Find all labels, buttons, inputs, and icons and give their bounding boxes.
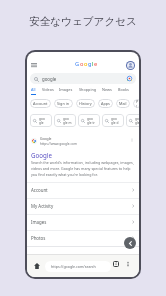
staticText: News xyxy=(102,87,112,92)
button[interactable]: Home xyxy=(34,263,40,269)
button[interactable]: Sign in xyxy=(57,99,70,108)
button[interactable]: Back xyxy=(124,237,136,249)
staticText: Google xyxy=(31,151,52,159)
staticText: Mail xyxy=(119,101,127,106)
staticText: Images xyxy=(31,219,47,225)
staticText: goo xyxy=(39,117,45,121)
staticText: e xyxy=(94,60,98,68)
staticText: https://google.com/search xyxy=(51,264,96,269)
button[interactable]: Account xyxy=(33,99,48,108)
staticText: My Activity xyxy=(31,203,54,209)
button[interactable]: goo xyxy=(126,114,139,127)
button[interactable]: google xyxy=(30,73,136,84)
button[interactable]: Menu xyxy=(31,63,37,67)
staticText: google xyxy=(42,76,57,82)
staticText: Books xyxy=(118,87,129,92)
staticText: Search the world's information, includin… xyxy=(31,160,135,177)
button[interactable]: Account xyxy=(27,182,139,198)
staticText: goo xyxy=(135,117,139,121)
button[interactable]: https://google.com/search xyxy=(45,261,111,272)
staticText: goo xyxy=(111,117,117,121)
staticText: o xyxy=(84,60,88,68)
staticText: Account xyxy=(31,187,48,193)
button[interactable]: goo xyxy=(78,114,100,127)
button[interactable]: Shopping xyxy=(79,87,97,94)
staticText: gle d xyxy=(111,121,119,125)
staticText: goo xyxy=(87,117,93,121)
staticText: gle tr xyxy=(87,121,95,125)
button[interactable]: All xyxy=(31,87,36,95)
button[interactable]: goo xyxy=(54,114,76,127)
button[interactable]: Account xyxy=(126,61,135,70)
staticText: Images xyxy=(59,87,73,92)
staticText: goo xyxy=(63,117,69,121)
button[interactable]: Tabs xyxy=(113,261,119,267)
button[interactable]: Play xyxy=(136,99,139,108)
button[interactable]: News xyxy=(102,87,112,94)
staticText: Videos xyxy=(42,87,54,92)
button[interactable]: Images xyxy=(59,87,73,94)
button[interactable]: goo xyxy=(30,114,52,127)
staticText: Play xyxy=(136,99,139,108)
staticText: gle m xyxy=(63,121,72,125)
staticText: g xyxy=(88,60,92,68)
staticText: Account xyxy=(33,101,48,106)
button[interactable]: More options xyxy=(125,261,131,267)
staticText: Sign in xyxy=(57,101,70,106)
staticText: History xyxy=(79,101,92,106)
button[interactable]: Books xyxy=(118,87,129,94)
staticText: gle xyxy=(39,121,44,125)
staticText: Shopping xyxy=(79,87,97,92)
staticText: Apps xyxy=(101,101,110,106)
button[interactable]: Photos xyxy=(27,230,139,246)
staticText: G xyxy=(75,60,80,68)
button[interactable]: Mail xyxy=(119,99,127,108)
staticText: Google xyxy=(40,136,52,141)
button[interactable]: My Activity xyxy=(27,198,139,214)
staticText: All xyxy=(31,87,36,92)
button[interactable]: Apps xyxy=(101,99,110,108)
staticText: Photos xyxy=(31,235,46,241)
other: Search by image xyxy=(127,76,132,81)
button[interactable]: History xyxy=(79,99,92,108)
button[interactable]: goo xyxy=(102,114,124,127)
staticText: l xyxy=(92,60,94,68)
staticText: 安全なウェブアクセス xyxy=(29,15,137,28)
staticText: gle s xyxy=(135,121,139,125)
button[interactable]: More xyxy=(130,138,134,142)
staticText: o xyxy=(80,60,84,68)
staticText: 4 xyxy=(115,262,117,266)
button[interactable]: Videos xyxy=(42,87,54,94)
staticText: https://www.google.com xyxy=(40,142,77,146)
button[interactable]: Images xyxy=(27,214,139,230)
